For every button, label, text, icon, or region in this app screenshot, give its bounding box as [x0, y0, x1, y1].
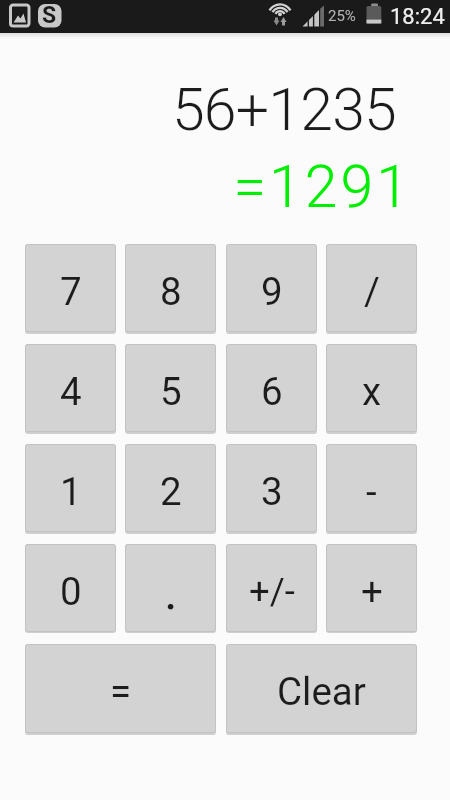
- staticText: 3: [261, 469, 283, 514]
- staticText: Clear: [277, 669, 366, 714]
- staticText: +: [361, 569, 383, 614]
- button[interactable]: Clear: [226, 644, 417, 733]
- button[interactable]: =: [25, 644, 216, 733]
- staticText: 6: [261, 369, 283, 414]
- staticText: /: [364, 269, 380, 314]
- staticText: 25%: [328, 7, 356, 25]
- button[interactable]: 6: [226, 344, 317, 432]
- staticText: 0: [60, 569, 82, 614]
- button[interactable]: x: [326, 344, 417, 432]
- staticText: 4: [60, 369, 82, 414]
- button[interactable]: -: [326, 444, 417, 532]
- button[interactable]: 5: [125, 344, 216, 432]
- staticText: 5: [160, 369, 182, 414]
- button[interactable]: .: [125, 544, 216, 632]
- button[interactable]: 4: [25, 344, 116, 432]
- button[interactable]: /: [326, 244, 417, 332]
- button[interactable]: 0: [25, 544, 116, 632]
- staticText: 56+1235: [0, 75, 396, 144]
- button[interactable]: +/-: [226, 544, 317, 632]
- staticText: 18:24: [390, 4, 445, 30]
- button[interactable]: 8: [125, 244, 216, 332]
- staticText: S: [42, 2, 57, 29]
- staticText: x: [362, 369, 382, 414]
- button[interactable]: 1: [25, 444, 116, 532]
- button[interactable]: 2: [125, 444, 216, 532]
- staticText: 7: [60, 269, 82, 314]
- button[interactable]: 3: [226, 444, 317, 532]
- staticText: =: [110, 669, 132, 714]
- staticText: +/-: [249, 570, 295, 613]
- staticText: 8: [160, 269, 182, 314]
- staticText: 1: [60, 469, 82, 514]
- staticText: .: [164, 561, 178, 622]
- staticText: 9: [261, 269, 283, 314]
- staticText: =1291: [0, 152, 412, 221]
- button[interactable]: 9: [226, 244, 317, 332]
- staticText: 2: [160, 469, 182, 514]
- button[interactable]: +: [326, 544, 417, 632]
- staticText: -: [366, 469, 377, 514]
- button[interactable]: 7: [25, 244, 116, 332]
